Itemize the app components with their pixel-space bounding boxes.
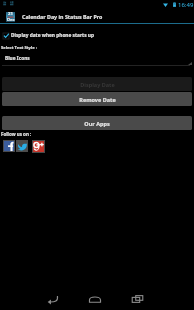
button[interactable]: Google Plus xyxy=(32,140,45,153)
button[interactable]: Twitter xyxy=(16,140,28,152)
button[interactable]: Display Date xyxy=(2,77,192,91)
button[interactable]: Display date when phone starts up xyxy=(0,28,194,42)
button[interactable]: Facebook xyxy=(3,140,15,152)
button[interactable]: Blue Icons xyxy=(0,53,194,66)
staticText: Display date when phone starts up xyxy=(11,32,94,39)
button[interactable]: Recent apps xyxy=(126,290,148,308)
staticText: Our Apps xyxy=(84,120,110,127)
staticText: Follow us on : xyxy=(1,131,32,137)
button[interactable]: Our Apps xyxy=(2,116,192,130)
button[interactable]: Home xyxy=(84,290,106,308)
staticText: Calendar Day in Status Bar Pro xyxy=(22,13,103,20)
staticText: Remove Date xyxy=(79,96,116,103)
staticText: 16:49 xyxy=(178,1,194,9)
staticText: Display Date xyxy=(80,81,115,88)
staticText: 21 xyxy=(8,11,13,17)
staticText: Dec xyxy=(7,17,15,23)
button[interactable]: Remove Date xyxy=(2,92,192,106)
button[interactable]: Back xyxy=(41,290,63,308)
staticText: Blue Icons xyxy=(5,55,30,62)
staticText: Select Text Style : xyxy=(1,45,38,51)
